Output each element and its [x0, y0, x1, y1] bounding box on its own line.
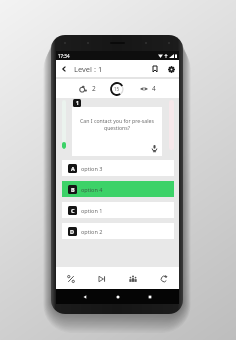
button[interactable]: D [62, 223, 174, 239]
staticText: 1 [76, 100, 79, 107]
staticText: option 2 [81, 228, 103, 235]
button[interactable]: A [62, 160, 174, 176]
staticText: 15 [114, 86, 120, 92]
button[interactable]: Leaderboard [117, 267, 148, 290]
staticText: D [70, 228, 75, 235]
staticText: A [71, 165, 75, 172]
staticText: B [71, 186, 75, 193]
other: Home [115, 294, 121, 300]
other: Back [82, 294, 88, 300]
staticText: 4 [152, 84, 156, 93]
staticText: C [71, 207, 75, 214]
staticText: option 3 [81, 165, 103, 172]
staticText: 2 [92, 84, 96, 93]
button[interactable]: Bookmark [149, 63, 161, 75]
staticText: 17:34 [58, 53, 70, 59]
button[interactable]: Timer [110, 82, 124, 96]
staticText: option 4 [81, 186, 103, 193]
button[interactable]: B [62, 181, 174, 197]
other: Recents [147, 294, 153, 300]
staticText: Can I contact you for pre-sales question… [78, 117, 156, 131]
button[interactable]: Back [58, 63, 70, 75]
button[interactable]: Settings [165, 63, 177, 75]
other: Listen [151, 145, 158, 152]
button[interactable]: Views [140, 81, 156, 96]
staticText: Level : 1 [74, 64, 103, 74]
button[interactable]: Shuffle [56, 267, 86, 290]
button[interactable]: Restart [148, 267, 179, 290]
button[interactable]: Skip next [86, 267, 117, 290]
button[interactable]: C [62, 202, 174, 218]
button[interactable]: Hints [79, 81, 96, 96]
staticText: option 1 [81, 207, 103, 214]
